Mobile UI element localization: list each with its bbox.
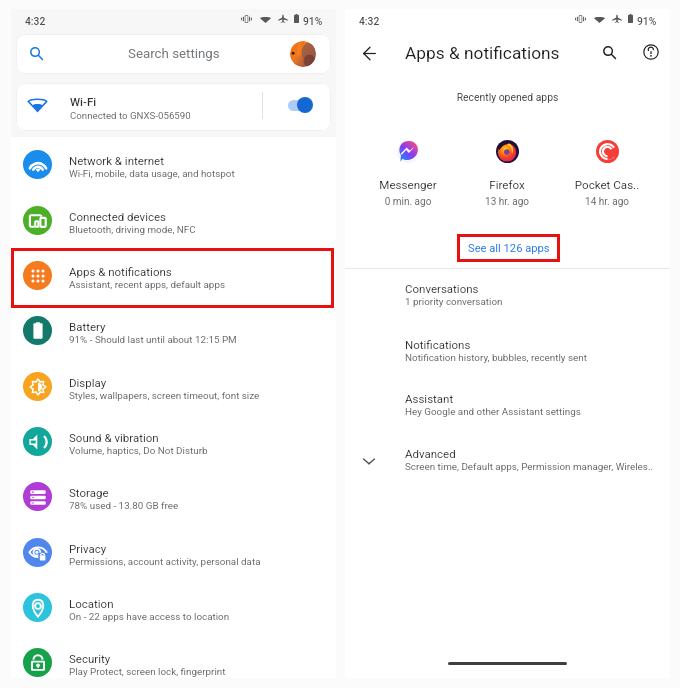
- button[interactable]: Messenger: [360, 136, 456, 208]
- staticText: Wi-Fi: [70, 95, 97, 108]
- button[interactable]: Back: [351, 35, 387, 71]
- button[interactable]: Conversations: [345, 270, 670, 317]
- button[interactable]: Sound & vibration: [11, 414, 336, 469]
- staticText: Messenger: [360, 178, 456, 192]
- button[interactable]: Storage: [11, 469, 336, 524]
- staticText: 91%: [303, 15, 323, 27]
- staticText: Apps & notifications: [405, 43, 560, 63]
- staticText: Play Protect, screen lock, fingerprint: [69, 666, 226, 678]
- staticText: See all 126 apps: [468, 242, 550, 255]
- button[interactable]: See all 126 apps: [457, 234, 560, 262]
- staticText: 91%: [637, 15, 657, 27]
- staticText: Location: [69, 597, 114, 610]
- staticText: 4:32: [359, 15, 380, 27]
- staticText: Search settings: [128, 46, 220, 62]
- staticText: Screen time, Default apps, Permission ma…: [405, 461, 654, 473]
- button[interactable]: Help: [633, 34, 669, 70]
- staticText: Privacy: [69, 542, 107, 555]
- staticText: Display: [69, 376, 107, 389]
- button[interactable]: Account: [290, 41, 316, 67]
- button[interactable]: Apps & notifications: [11, 248, 336, 303]
- staticText: Bluetooth, driving mode, NFC: [69, 224, 196, 236]
- button[interactable]: Advanced: [345, 435, 670, 482]
- button[interactable]: Pocket Cas..: [559, 136, 655, 208]
- staticText: Network & internet: [69, 154, 164, 167]
- staticText: Permissions, account activity, personal …: [69, 556, 261, 568]
- staticText: Connected to GNXS-056590: [70, 110, 191, 121]
- button[interactable]: Location: [11, 580, 336, 635]
- staticText: Security: [69, 652, 111, 665]
- staticText: Sound & vibration: [69, 431, 159, 444]
- staticText: Wi-Fi, mobile, data usage, and hotspot: [69, 168, 235, 180]
- staticText: Storage: [69, 486, 109, 499]
- staticText: Notifications: [405, 338, 471, 351]
- button[interactable]: Notifications: [345, 326, 670, 373]
- button[interactable]: Network & internet: [11, 137, 336, 192]
- button[interactable]: Expand advanced: [356, 448, 382, 474]
- staticText: Pocket Cas..: [559, 178, 655, 192]
- staticText: Notification history, bubbles, recently …: [405, 352, 587, 364]
- staticText: 13 hr. ago: [459, 196, 555, 208]
- staticText: Volume, haptics, Do Not Disturb: [69, 445, 208, 457]
- button[interactable]: Privacy: [11, 525, 336, 580]
- staticText: Firefox: [459, 178, 555, 192]
- button[interactable]: Search settings: [16, 34, 331, 74]
- staticText: Battery: [69, 320, 106, 333]
- staticText: Assistant, recent apps, default apps: [69, 279, 225, 291]
- staticText: Apps & notifications: [69, 265, 172, 278]
- button[interactable]: Security: [11, 635, 336, 688]
- staticText: 1 priority conversation: [405, 296, 503, 308]
- staticText: Conversations: [405, 282, 479, 295]
- button[interactable]: Assistant: [345, 380, 670, 427]
- staticText: On - 22 apps have access to location: [69, 611, 230, 623]
- button[interactable]: Firefox: [459, 136, 555, 208]
- staticText: 4:32: [25, 15, 46, 27]
- staticText: Connected devices: [69, 210, 166, 223]
- staticText: 14 hr. ago: [559, 196, 655, 208]
- staticText: Styles, wallpapers, screen timeout, font…: [69, 390, 260, 402]
- button[interactable]: Wi-Fi: [16, 83, 331, 131]
- staticText: Hey Google and other Assistant settings: [405, 406, 581, 418]
- staticText: 91% - Should last until about 12:15 PM: [69, 334, 237, 346]
- staticText: Advanced: [405, 447, 456, 460]
- button[interactable]: Display: [11, 359, 336, 414]
- staticText: 78% used - 13.80 GB free: [69, 500, 179, 512]
- button[interactable]: Battery: [11, 303, 336, 358]
- staticText: Recently opened apps: [345, 91, 670, 103]
- staticText: 0 min. ago: [360, 196, 456, 208]
- button[interactable]: Connected devices: [11, 193, 336, 248]
- button[interactable]: Search: [591, 34, 627, 70]
- staticText: Assistant: [405, 392, 454, 405]
